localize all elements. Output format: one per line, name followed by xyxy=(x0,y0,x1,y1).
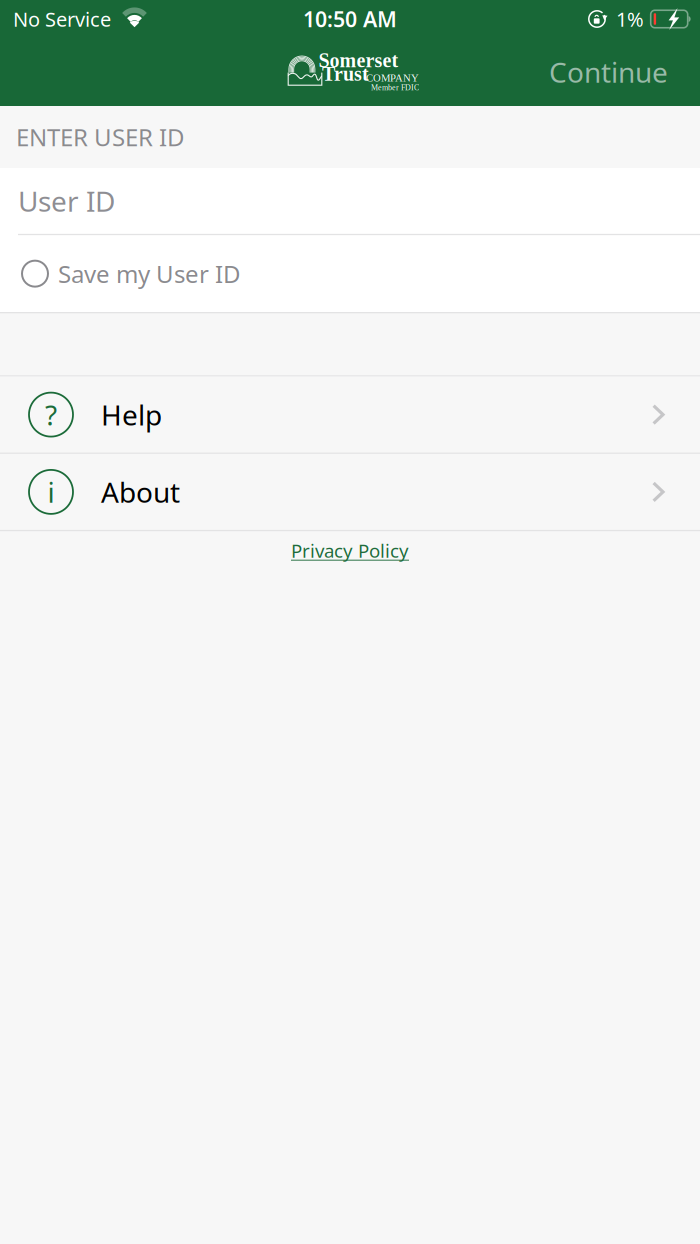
staticText: COMPANY xyxy=(366,72,419,84)
staticText: Help xyxy=(101,396,162,433)
staticText: ? xyxy=(45,396,57,433)
staticText: ENTER USER ID xyxy=(16,121,185,153)
button[interactable]: Save my User ID xyxy=(0,236,241,312)
staticText: 10:50 AM xyxy=(303,5,397,33)
button[interactable]: ? xyxy=(0,377,700,453)
staticText: Member FDIC xyxy=(371,83,419,92)
staticText: Somerset xyxy=(318,49,398,71)
staticText: No Service xyxy=(13,6,111,32)
staticText: 1% xyxy=(616,6,644,32)
button[interactable]: Continue xyxy=(532,41,700,103)
staticText: About xyxy=(101,473,180,510)
staticText: Continue xyxy=(549,53,668,91)
staticText: Privacy Policy xyxy=(291,538,409,563)
button[interactable]: Privacy Policy xyxy=(279,531,421,572)
staticText: i xyxy=(47,473,54,510)
staticText: Trust xyxy=(322,63,369,85)
staticText: Save my User ID xyxy=(58,258,241,290)
button[interactable]: i xyxy=(0,454,700,530)
staticText: User ID xyxy=(18,182,115,219)
